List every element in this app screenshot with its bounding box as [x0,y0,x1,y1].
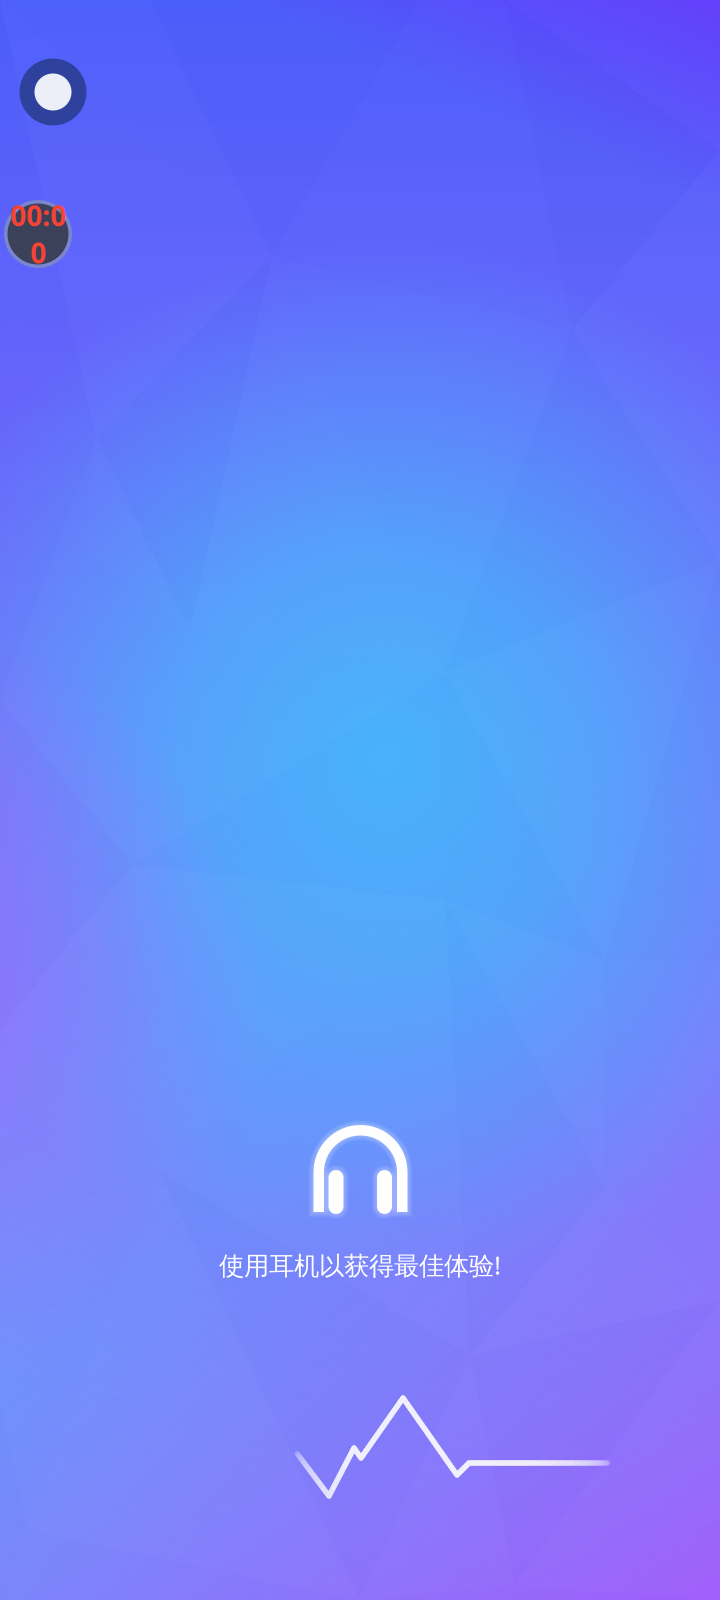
button[interactable]: Close [19,58,86,125]
staticText: 使用耳机以获得最佳体验! [219,1248,501,1282]
button[interactable]: Timer 00:00 [4,200,72,268]
staticText: 00:00 [10,197,66,271]
